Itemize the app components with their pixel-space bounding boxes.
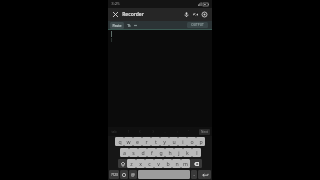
button[interactable]: Format text	[126, 22, 132, 28]
staticText: )	[152, 129, 154, 134]
staticText: n	[175, 160, 179, 167]
staticText: Recorder	[122, 11, 144, 18]
button[interactable]: z	[127, 159, 136, 168]
button[interactable]: )	[151, 129, 155, 134]
button[interactable]: Shift	[118, 159, 127, 168]
button[interactable]: m	[181, 159, 190, 168]
button[interactable]: Next	[199, 129, 210, 135]
staticText: b	[166, 160, 170, 167]
button[interactable]: o	[187, 137, 196, 146]
button[interactable]: h	[165, 148, 174, 157]
staticText: y	[163, 138, 166, 145]
button[interactable]: e	[133, 137, 142, 146]
staticText: Next	[201, 130, 208, 134]
button[interactable]: !	[127, 129, 130, 134]
button[interactable]: Camera off	[191, 10, 200, 19]
button[interactable]: (	[138, 129, 142, 134]
button[interactable]: v	[154, 159, 163, 168]
staticText: d	[141, 149, 145, 156]
button[interactable]: q	[115, 137, 124, 146]
button[interactable]	[108, 29, 212, 127]
staticText: k	[186, 149, 189, 156]
staticText: f	[151, 149, 153, 156]
staticText: p	[199, 138, 203, 145]
staticText: i	[182, 138, 184, 145]
button[interactable]: More options	[133, 23, 138, 28]
staticText: .	[193, 172, 195, 178]
button[interactable]: w	[124, 137, 133, 146]
staticText: Paste	[112, 23, 122, 28]
staticText: w	[126, 138, 131, 145]
button[interactable]: .	[191, 170, 197, 179]
button[interactable]: Enter	[198, 170, 211, 179]
staticText: x	[139, 160, 142, 167]
staticText: OUTPUT	[191, 23, 204, 27]
button[interactable]: u	[169, 137, 178, 146]
staticText: z	[130, 160, 133, 167]
button[interactable]: k	[183, 148, 192, 157]
staticText: tab	[111, 129, 117, 134]
staticText: e	[136, 138, 139, 145]
staticText: @	[131, 172, 135, 178]
button[interactable]: i	[178, 137, 187, 146]
staticText: ?123	[111, 173, 118, 177]
staticText: g	[159, 149, 163, 156]
button[interactable]: tab	[110, 129, 118, 134]
button[interactable]: s	[129, 148, 138, 157]
button[interactable]: Record	[200, 10, 209, 19]
staticText: '	[188, 129, 189, 134]
staticText: a	[123, 149, 126, 156]
button[interactable]: Paste	[110, 22, 124, 29]
button[interactable]: Close	[111, 10, 120, 19]
button[interactable]: b	[163, 159, 172, 168]
button[interactable]: c	[145, 159, 154, 168]
button[interactable]: r	[142, 137, 151, 146]
button[interactable]: Backspace	[190, 159, 202, 168]
staticText: r	[145, 138, 148, 145]
button[interactable]: f	[147, 148, 156, 157]
staticText: o	[190, 138, 194, 145]
button[interactable]: Emoji	[120, 170, 128, 179]
staticText: u	[172, 138, 176, 145]
button[interactable]: n	[172, 159, 181, 168]
staticText: (	[139, 129, 141, 134]
staticText: 3:25	[111, 1, 120, 7]
button[interactable]: @	[129, 170, 137, 179]
staticText: s	[132, 149, 135, 156]
staticText: j	[178, 149, 180, 156]
staticText: Tt	[127, 23, 131, 28]
staticText: q	[118, 138, 122, 145]
button[interactable]: Space	[138, 170, 190, 179]
button[interactable]: OUTPUT	[187, 22, 208, 28]
button[interactable]: ?123	[109, 170, 119, 179]
staticText: l	[196, 149, 198, 156]
button[interactable]: p	[196, 137, 205, 146]
staticText: t	[155, 138, 157, 145]
staticText: h	[168, 149, 172, 156]
button[interactable]: d	[138, 148, 147, 157]
button[interactable]: x	[136, 159, 145, 168]
button[interactable]: y	[160, 137, 169, 146]
staticText: c	[148, 160, 151, 167]
button[interactable]: t	[151, 137, 160, 146]
button[interactable]: Microphone	[182, 10, 191, 19]
staticText: !	[128, 129, 129, 134]
button[interactable]: j	[174, 148, 183, 157]
staticText: :	[177, 129, 178, 134]
staticText: v	[157, 160, 160, 167]
staticText: m	[183, 160, 188, 167]
button[interactable]: l	[192, 148, 201, 157]
button[interactable]: g	[156, 148, 165, 157]
button[interactable]: a	[120, 148, 129, 157]
